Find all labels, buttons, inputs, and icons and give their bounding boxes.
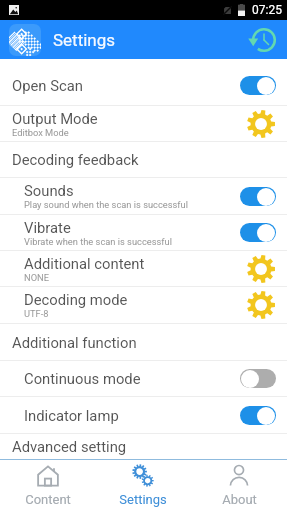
staticText: Play sound when the scan is successful bbox=[24, 199, 188, 210]
staticText: Open Scan bbox=[12, 77, 83, 94]
button[interactable]: Configure bbox=[246, 254, 276, 284]
button[interactable]: Decoding mode bbox=[0, 287, 287, 323]
staticText: Advanced setting bbox=[12, 438, 127, 455]
button[interactable]: Switch on bbox=[240, 76, 276, 95]
button[interactable]: App logo bbox=[9, 24, 41, 56]
staticText: Continuous mode bbox=[24, 370, 141, 387]
button[interactable]: Content bbox=[0, 459, 95, 512]
button[interactable]: Configure bbox=[246, 109, 276, 139]
staticText: Settings bbox=[53, 30, 116, 50]
button[interactable]: Vibrate bbox=[0, 215, 287, 250]
button[interactable]: Switch off bbox=[240, 369, 276, 388]
staticText: Additional content bbox=[24, 255, 145, 272]
staticText: Vibrate bbox=[24, 219, 71, 236]
button[interactable]: Open Scan bbox=[0, 59, 287, 105]
button[interactable]: Indicator lamp bbox=[0, 397, 287, 433]
staticText: Vibrate when the scan is successful bbox=[24, 236, 172, 247]
button[interactable]: Switch on bbox=[240, 223, 276, 242]
button[interactable]: Settings bbox=[95, 459, 191, 512]
button[interactable]: About bbox=[191, 459, 287, 512]
staticText: Content bbox=[25, 492, 71, 507]
button[interactable]: Configure bbox=[246, 290, 276, 320]
button[interactable]: Output Mode bbox=[0, 106, 287, 141]
staticText: Editbox Mode bbox=[12, 127, 69, 138]
button[interactable]: History bbox=[249, 25, 279, 55]
button[interactable]: Continuous mode bbox=[0, 361, 287, 396]
button[interactable]: Switch on bbox=[240, 187, 276, 206]
staticText: NONE bbox=[24, 272, 49, 283]
staticText: 07:25 bbox=[252, 3, 282, 17]
staticText: Indicator lamp bbox=[24, 407, 119, 424]
staticText: About bbox=[222, 492, 257, 507]
staticText: Decoding mode bbox=[24, 291, 128, 308]
button[interactable]: Sounds bbox=[0, 178, 287, 214]
staticText: Additional function bbox=[12, 334, 137, 351]
staticText: Output Mode bbox=[12, 110, 98, 127]
button[interactable]: Additional content bbox=[0, 251, 287, 286]
staticText: Decoding feedback bbox=[12, 151, 139, 168]
staticText: Settings bbox=[119, 492, 167, 507]
staticText: UTF-8 bbox=[24, 308, 49, 319]
staticText: Sounds bbox=[24, 182, 74, 199]
button[interactable]: Switch on bbox=[240, 406, 276, 425]
